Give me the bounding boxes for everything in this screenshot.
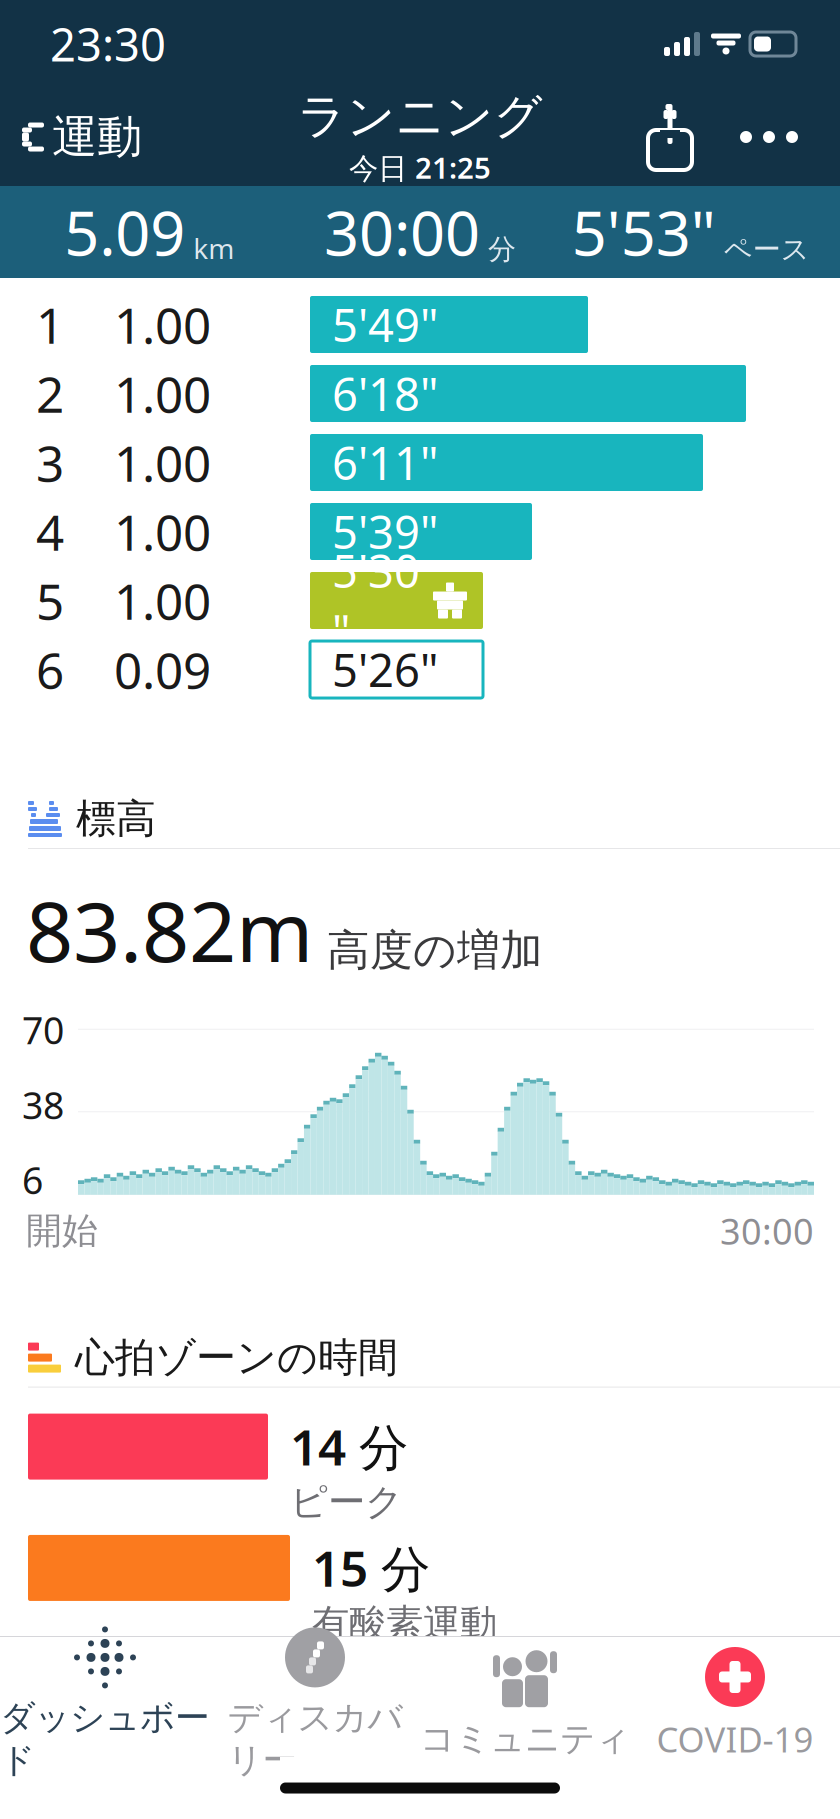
staticText: 5'49" <box>332 294 438 355</box>
staticText: 23:30 <box>50 14 166 74</box>
staticText: 今日 21:25 <box>349 148 491 187</box>
staticText: 1.00 <box>114 430 211 495</box>
staticText: 15 分 <box>312 1535 430 1600</box>
button[interactable]: コミュニティ <box>420 1634 630 1760</box>
staticText: 運動 <box>52 109 142 165</box>
staticText: 分 <box>488 232 516 267</box>
staticText: 0.09 <box>114 637 211 702</box>
staticText: 6 <box>22 1155 43 1205</box>
staticText: 3 <box>36 430 64 495</box>
staticText: ダッシュボード <box>0 1696 210 1782</box>
staticText: 30:00 <box>720 1207 814 1255</box>
staticText: 5.09 <box>64 191 185 273</box>
staticText: 1 <box>36 292 64 357</box>
staticText: COVID-19 <box>656 1716 813 1762</box>
staticText: 6 <box>36 637 64 702</box>
button[interactable]: ディスカバリー <box>210 1612 420 1782</box>
staticText: 70 <box>22 1005 64 1055</box>
staticText: 高度の増加 <box>327 924 543 977</box>
staticText: 6'11" <box>332 432 438 493</box>
button[interactable]: 共有 <box>626 98 714 176</box>
staticText: 83.82m <box>26 875 313 985</box>
staticText: 1.00 <box>114 568 211 633</box>
button[interactable]: ダッシュボード <box>0 1612 210 1782</box>
staticText: 5'30" <box>332 540 420 661</box>
staticText: 2 <box>36 361 64 426</box>
staticText: 5 <box>36 568 64 633</box>
staticText: ディスカバリー <box>227 1696 402 1782</box>
staticText: 5'26" <box>332 639 438 700</box>
staticText: 1.00 <box>114 499 211 564</box>
staticText: 心拍ゾーンの時間 <box>75 1333 398 1382</box>
staticText: ペース <box>724 232 810 267</box>
staticText: 38 <box>22 1080 64 1130</box>
staticText: 標高 <box>76 794 156 843</box>
staticText: コミュニティ <box>420 1718 630 1760</box>
staticText: 1.00 <box>114 361 211 426</box>
staticText: 5'39" <box>332 501 438 562</box>
staticText: 30:00 <box>324 191 480 273</box>
staticText: 5'53" <box>572 191 716 273</box>
staticText: 1.00 <box>114 292 211 357</box>
button[interactable]: その他のオプション <box>714 103 824 171</box>
button[interactable]: 運動 <box>0 97 158 177</box>
staticText: 14 分 <box>290 1414 408 1479</box>
button[interactable]: COVID-19 <box>630 1632 840 1762</box>
staticText: 開始 <box>26 1209 98 1253</box>
staticText: ピーク <box>290 1479 403 1525</box>
staticText: 有酸素運動 <box>312 1600 497 1646</box>
staticText: 6'18" <box>332 363 438 424</box>
staticText: 4 <box>36 499 64 564</box>
staticText: km <box>193 229 234 267</box>
staticText: ランニング <box>297 87 542 146</box>
